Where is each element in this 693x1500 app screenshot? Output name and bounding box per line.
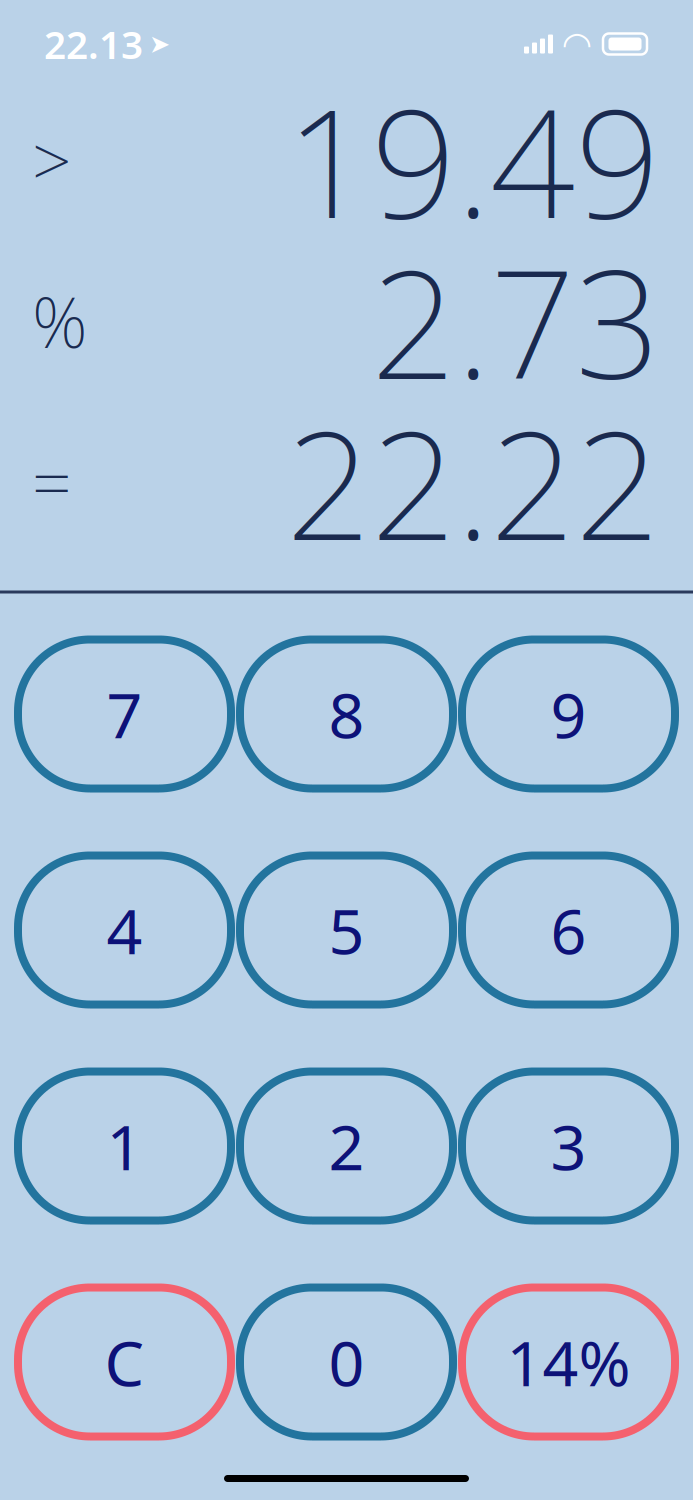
staticText: 3 [550, 1104, 586, 1188]
button[interactable]: 1 [18, 1071, 231, 1220]
button[interactable]: 3 [462, 1071, 675, 1220]
button[interactable]: 5 [240, 855, 453, 1004]
staticText: 1 [106, 1104, 142, 1188]
staticText: 22.22 [286, 383, 660, 581]
staticText: 5 [328, 888, 364, 972]
button[interactable]: 6 [462, 855, 675, 1004]
staticText: 22.13 [44, 18, 143, 70]
staticText: 2.73 [371, 222, 660, 420]
button[interactable]: C [18, 1287, 231, 1436]
staticText: 8 [328, 672, 364, 756]
staticText: > [32, 114, 72, 206]
staticText: = [32, 436, 72, 528]
button[interactable]: 9 [462, 639, 675, 788]
staticText: 19.49 [286, 61, 660, 259]
button[interactable]: 7 [18, 639, 231, 788]
staticText: 6 [550, 888, 586, 972]
staticText: 9 [550, 672, 586, 756]
button[interactable]: 8 [240, 639, 453, 788]
button[interactable]: 14% [462, 1287, 675, 1436]
button[interactable]: 2 [240, 1071, 453, 1220]
button[interactable]: 0 [240, 1287, 453, 1436]
staticText: 14% [506, 1320, 630, 1404]
staticText: 2 [328, 1104, 364, 1188]
staticText: ➤ [149, 30, 170, 58]
button[interactable]: 4 [18, 855, 231, 1004]
staticText: C [104, 1320, 144, 1404]
staticText: 0 [328, 1320, 364, 1404]
staticText: 7 [106, 672, 142, 756]
staticText: % [32, 275, 88, 367]
staticText: 4 [106, 888, 142, 972]
staticText: ◠ [563, 24, 590, 64]
